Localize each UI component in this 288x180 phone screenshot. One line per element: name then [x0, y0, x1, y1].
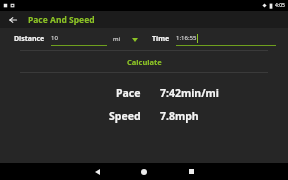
button[interactable]: 1:16:55: [176, 33, 276, 46]
staticText: Distance: [14, 34, 45, 44]
button[interactable]: 10: [51, 33, 107, 46]
staticText: 7.8mph: [160, 109, 199, 123]
staticText: Calculate: [127, 57, 162, 67]
staticText: mi: [113, 35, 121, 43]
button[interactable]: Navigate up: [5, 12, 20, 27]
button[interactable]: Recent apps: [180, 163, 202, 180]
staticText: 10: [51, 34, 58, 42]
staticText: 4:05: [275, 2, 285, 9]
staticText: Pace: [116, 86, 141, 100]
button[interactable]: Select distance unit: [129, 34, 140, 45]
staticText: 7:42min/mi: [160, 86, 219, 100]
button[interactable]: Calculate: [0, 51, 288, 72]
button[interactable]: Back: [86, 163, 108, 180]
staticText: Time: [152, 34, 170, 44]
staticText: Speed: [109, 109, 141, 123]
staticText: Pace And Speed: [28, 14, 95, 26]
button[interactable]: Home: [133, 163, 155, 180]
staticText: 1:16:55: [176, 34, 197, 42]
